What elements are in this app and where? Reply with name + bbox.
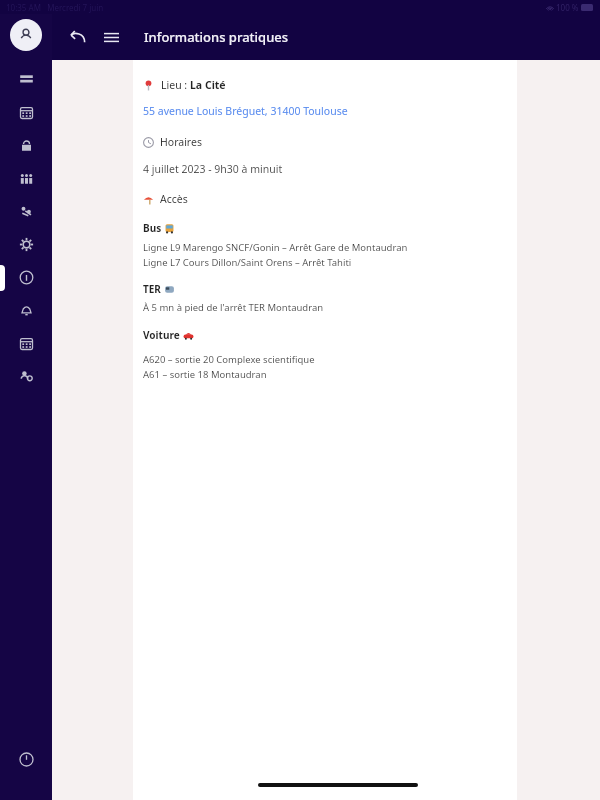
staticText: 100 % bbox=[556, 2, 579, 13]
staticText: Informations pratiques bbox=[144, 28, 289, 46]
staticText: Lieu : bbox=[161, 78, 190, 92]
button[interactable]: Activites bbox=[0, 228, 52, 261]
staticText: Ligne L9 Marengo SNCF/Gonin – Arrêt Gare… bbox=[143, 241, 408, 254]
button[interactable]: Liste bbox=[0, 63, 52, 96]
button[interactable]: Programme bbox=[0, 96, 52, 129]
staticText: La Cité bbox=[190, 78, 226, 92]
button[interactable]: Retour bbox=[62, 22, 92, 52]
staticText: TER bbox=[143, 282, 164, 296]
staticText: Horaires bbox=[160, 135, 202, 149]
button[interactable]: Contacts bbox=[0, 360, 52, 393]
button[interactable]: Deconnexion bbox=[9, 742, 43, 776]
staticText: À 5 mn à pied de l'arrêt TER Montaudran bbox=[143, 301, 324, 314]
button[interactable]: Equipes bbox=[0, 162, 52, 195]
staticText: 10:35 AM Mercredi 7 juin bbox=[6, 2, 104, 13]
staticText: 55 avenue Louis Bréguet, 31400 Toulouse bbox=[143, 104, 348, 118]
button[interactable]: Menu bbox=[96, 22, 126, 52]
staticText: 4 juillet 2023 - 9h30 à minuit bbox=[143, 162, 283, 176]
staticText: Ligne L7 Cours Dillon/Saint Orens – Arrê… bbox=[143, 256, 352, 269]
button[interactable]: Informations bbox=[0, 261, 52, 294]
button[interactable]: Notifications bbox=[0, 294, 52, 327]
button[interactable]: Profil bbox=[10, 19, 42, 51]
staticText: Voiture bbox=[143, 328, 183, 342]
staticText: Bus bbox=[143, 221, 164, 235]
button[interactable]: Exposants bbox=[0, 129, 52, 162]
button[interactable]: 55 avenue Louis Bréguet, 31400 Toulouse bbox=[143, 104, 348, 118]
button[interactable]: Agenda bbox=[0, 327, 52, 360]
button[interactable]: Partenaires bbox=[0, 195, 52, 228]
staticText: Accès bbox=[160, 192, 188, 206]
staticText: A61 – sortie 18 Montaudran bbox=[143, 368, 267, 381]
staticText: A620 – sortie 20 Complexe scientifique bbox=[143, 353, 315, 366]
